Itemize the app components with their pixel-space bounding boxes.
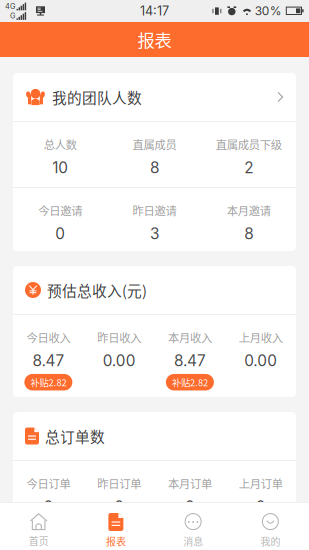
staticText: 补贴2.82 bbox=[172, 375, 208, 389]
staticText: 消息 bbox=[183, 534, 203, 548]
staticText: 8.47 bbox=[174, 351, 206, 370]
button[interactable]: 我的 bbox=[232, 503, 309, 550]
staticText: 上月收入 bbox=[239, 329, 283, 345]
button[interactable]: 我的团队人数 bbox=[13, 73, 296, 121]
staticText: 30% bbox=[255, 4, 282, 18]
staticText: 预估总收入(元) bbox=[47, 279, 147, 301]
button[interactable]: 首页 bbox=[0, 503, 77, 550]
staticText: 昨日收入 bbox=[97, 329, 141, 345]
staticText: 10 bbox=[52, 158, 68, 177]
staticText: 总人数 bbox=[44, 136, 77, 152]
staticText: 上月订单 bbox=[239, 475, 283, 491]
staticText: 8 bbox=[150, 158, 159, 177]
staticText: 8 bbox=[244, 224, 253, 243]
staticText: G bbox=[10, 11, 15, 20]
staticText: 0 bbox=[185, 497, 195, 516]
staticText: 14:17 bbox=[140, 3, 169, 19]
staticText: 8.47 bbox=[32, 351, 64, 370]
button[interactable]: 消息 bbox=[154, 503, 232, 550]
staticText: 直属成员下级 bbox=[216, 136, 282, 152]
staticText: 0 bbox=[43, 497, 53, 516]
staticText: 本月收入 bbox=[168, 329, 212, 345]
staticText: 2 bbox=[244, 158, 253, 177]
staticText: 0 bbox=[114, 497, 124, 516]
staticText: 补贴2.82 bbox=[30, 375, 66, 389]
staticText: 0.00 bbox=[103, 351, 136, 370]
staticText: 今日邀请 bbox=[38, 202, 82, 218]
staticText: 4G bbox=[5, 2, 15, 11]
staticText: 昨日邀请 bbox=[132, 202, 176, 218]
staticText: 我的团队人数 bbox=[52, 86, 142, 108]
staticText: 本月邀请 bbox=[227, 202, 271, 218]
staticText: 今日订单 bbox=[26, 475, 70, 491]
staticText: 总订单数 bbox=[45, 425, 105, 447]
button[interactable]: 报表 bbox=[77, 503, 154, 550]
staticText: 首页 bbox=[29, 533, 49, 548]
staticText: 报表 bbox=[106, 534, 126, 548]
staticText: 报表 bbox=[137, 27, 171, 52]
staticText: 3 bbox=[150, 224, 159, 243]
staticText: 我的 bbox=[260, 534, 280, 548]
staticText: 0 bbox=[55, 224, 65, 243]
staticText: 昨日订单 bbox=[97, 475, 141, 491]
staticText: 0 bbox=[256, 497, 266, 516]
staticText: 本月订单 bbox=[168, 475, 212, 491]
staticText: 直属成员 bbox=[132, 136, 176, 152]
staticText: 今日收入 bbox=[26, 329, 70, 345]
staticText: 0.00 bbox=[244, 351, 277, 370]
